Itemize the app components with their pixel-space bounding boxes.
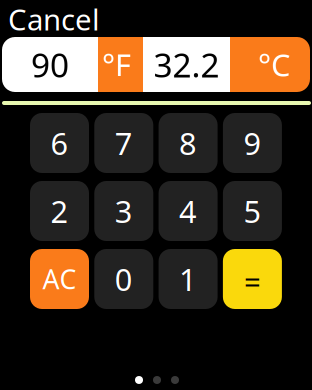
staticText: 7 [115,123,133,163]
staticText: 6 [50,123,68,163]
button[interactable]: 5 [223,181,282,241]
staticText: 32.2 [153,42,219,87]
staticText: °C [258,44,290,85]
button[interactable]: °F [98,37,143,92]
staticText: 1 [179,259,197,299]
button[interactable]: AC [30,249,89,309]
button[interactable]: 8 [159,113,218,173]
button[interactable]: 1 [159,249,218,309]
button[interactable]: °C [230,37,310,92]
staticText: 4 [179,191,197,231]
staticText: AC [42,261,76,297]
staticText: 90 [31,42,69,87]
staticText: Cancel [8,0,100,38]
button[interactable]: 7 [94,113,153,173]
button[interactable]: 6 [30,113,89,173]
staticText: °F [102,44,131,85]
staticText: 3 [115,191,133,231]
staticText: 0 [115,259,133,299]
staticText: 9 [243,123,261,163]
staticText: 8 [179,123,197,163]
button[interactable]: 3 [94,181,153,241]
staticText: 2 [50,191,68,231]
button[interactable]: Cancel [8,4,148,34]
button[interactable]: 9 [223,113,282,173]
button[interactable]: 0 [94,249,153,309]
staticText: = [244,261,261,300]
button[interactable]: 4 [159,181,218,241]
button[interactable]: = [223,249,282,309]
button[interactable]: 2 [30,181,89,241]
staticText: 5 [243,191,261,231]
